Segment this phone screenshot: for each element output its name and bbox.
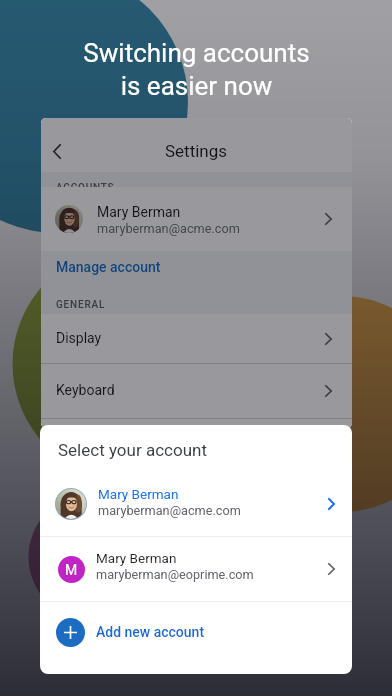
button[interactable]: M [40,537,352,601]
button[interactable]: Mary Berman [41,187,352,251]
staticText: Keyboard [56,382,352,398]
staticText: maryberman@eoprime.com [96,567,254,582]
button[interactable]: Mary Berman [40,472,352,536]
staticText: Add new account [96,624,205,640]
staticText: Select your account [58,440,207,460]
button[interactable]: Display [41,314,352,363]
button[interactable]: Back [41,133,75,169]
staticText: M [65,562,78,578]
staticText: Switching accounts is easier now [83,38,310,101]
staticText: Settings [165,141,228,161]
staticText: maryberman@acme.com [98,503,241,518]
staticText: Display [56,330,352,346]
staticText: maryberman@acme.com [97,221,240,236]
staticText: Mary Berman [97,204,181,220]
button[interactable]: Keyboard [41,364,352,418]
button[interactable]: Manage account [41,251,352,285]
staticText: Manage account [56,259,161,275]
staticText: ACCOUNTS [56,182,115,194]
staticText: GENERAL [56,299,106,311]
button[interactable]: Add new account [40,602,352,674]
staticText: Mary Berman [96,550,177,566]
staticText: Mary Berman [98,486,179,502]
